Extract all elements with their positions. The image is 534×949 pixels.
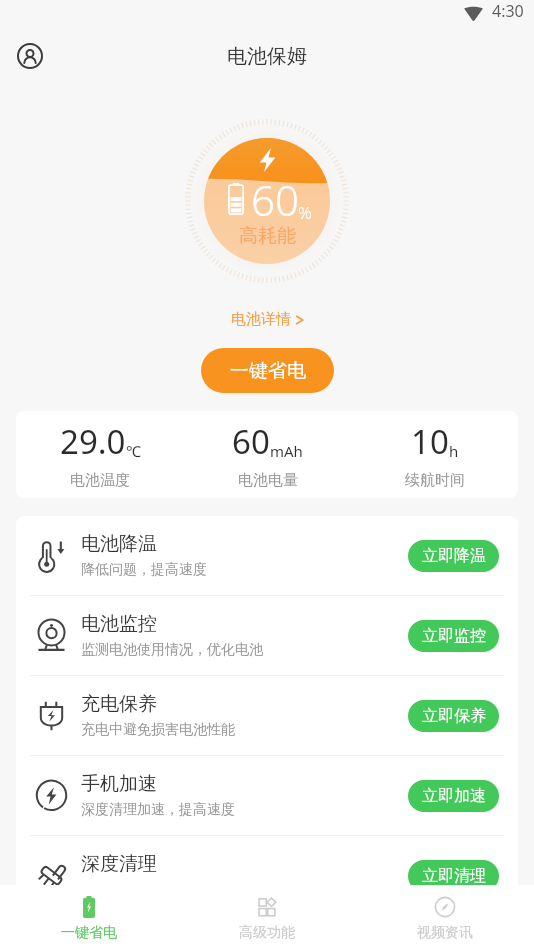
staticText: 立即加速 bbox=[422, 786, 486, 806]
button[interactable]: 电池降温 bbox=[16, 516, 518, 595]
staticText: 视频资讯 bbox=[417, 924, 473, 942]
button[interactable]: 一键省电 bbox=[0, 885, 178, 949]
button[interactable]: 高级功能 bbox=[178, 885, 356, 949]
staticText: 60 bbox=[251, 171, 299, 228]
staticText: 一键省电 bbox=[61, 924, 117, 942]
staticText: 电池保姆 bbox=[227, 44, 307, 69]
staticText: 立即清理 bbox=[422, 866, 486, 886]
staticText: 手机加速 bbox=[81, 772, 157, 796]
button[interactable]: 深度清理 bbox=[16, 836, 518, 915]
staticText: 续航时间 bbox=[405, 471, 465, 490]
staticText: 一键省电 bbox=[230, 359, 306, 383]
staticText: 电池监控 bbox=[81, 612, 157, 636]
staticText: 监测电池使用情况，优化电池 bbox=[81, 641, 263, 659]
staticText: 高耗能 bbox=[239, 224, 296, 248]
staticText: 29.0 bbox=[60, 419, 126, 464]
staticText: mAh bbox=[270, 441, 303, 461]
button[interactable]: 视频资讯 bbox=[356, 885, 534, 949]
staticText: % bbox=[298, 201, 312, 224]
button[interactable]: 手机加速 bbox=[16, 756, 518, 835]
staticText: 充电保养 bbox=[81, 692, 157, 716]
button[interactable]: 立即加速 bbox=[408, 780, 499, 812]
staticText: 立即保养 bbox=[422, 706, 486, 726]
staticText: 立即降温 bbox=[422, 546, 486, 566]
staticText: 电池电量 bbox=[238, 471, 298, 490]
staticText: 10 bbox=[411, 419, 449, 464]
staticText: 60 bbox=[232, 419, 270, 464]
staticText: 降低问题，提高速度 bbox=[81, 561, 207, 579]
staticText: 深度清理 bbox=[81, 852, 157, 876]
button[interactable]: 电池详情 bbox=[225, 306, 309, 333]
button[interactable]: 立即保养 bbox=[408, 700, 499, 732]
staticText: 高级功能 bbox=[239, 924, 295, 942]
button[interactable]: 立即降温 bbox=[408, 540, 499, 572]
button[interactable]: 立即监控 bbox=[408, 620, 499, 652]
staticText: 立即监控 bbox=[422, 626, 486, 646]
button[interactable]: 一键省电 bbox=[201, 348, 334, 393]
staticText: 电池降温 bbox=[81, 532, 157, 556]
button[interactable]: 充电保养 bbox=[16, 676, 518, 755]
staticText: h bbox=[449, 441, 459, 461]
staticText: 充电中避免损害电池性能 bbox=[81, 721, 235, 739]
staticText: 电池详情 bbox=[231, 310, 291, 329]
button[interactable]: 电池监控 bbox=[16, 596, 518, 675]
staticText: 电池温度 bbox=[70, 471, 130, 490]
staticText: 深度清理加速，提高速度 bbox=[81, 801, 235, 819]
button[interactable]: 立即清理 bbox=[408, 860, 499, 892]
button[interactable]: Profile bbox=[14, 40, 46, 72]
staticText: ℃ bbox=[126, 441, 141, 461]
staticText: 4:30 bbox=[492, 0, 524, 22]
